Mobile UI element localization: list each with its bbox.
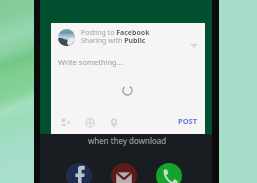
- button[interactable]: Posting to Facebook: [51, 23, 205, 134]
- button[interactable]: Photo: [83, 116, 97, 130]
- staticText: when they download: [88, 135, 167, 146]
- staticText: Posting to Facebook: [81, 28, 150, 38]
- button[interactable]: POST: [175, 113, 201, 129]
- button[interactable]: Location: [107, 116, 121, 130]
- staticText: Sharing with Public: [81, 36, 146, 46]
- other: Expand: [189, 40, 199, 50]
- staticText: Write something...: [58, 57, 123, 67]
- staticText: POST: [178, 116, 198, 126]
- button[interactable]: Tag people: [58, 116, 72, 130]
